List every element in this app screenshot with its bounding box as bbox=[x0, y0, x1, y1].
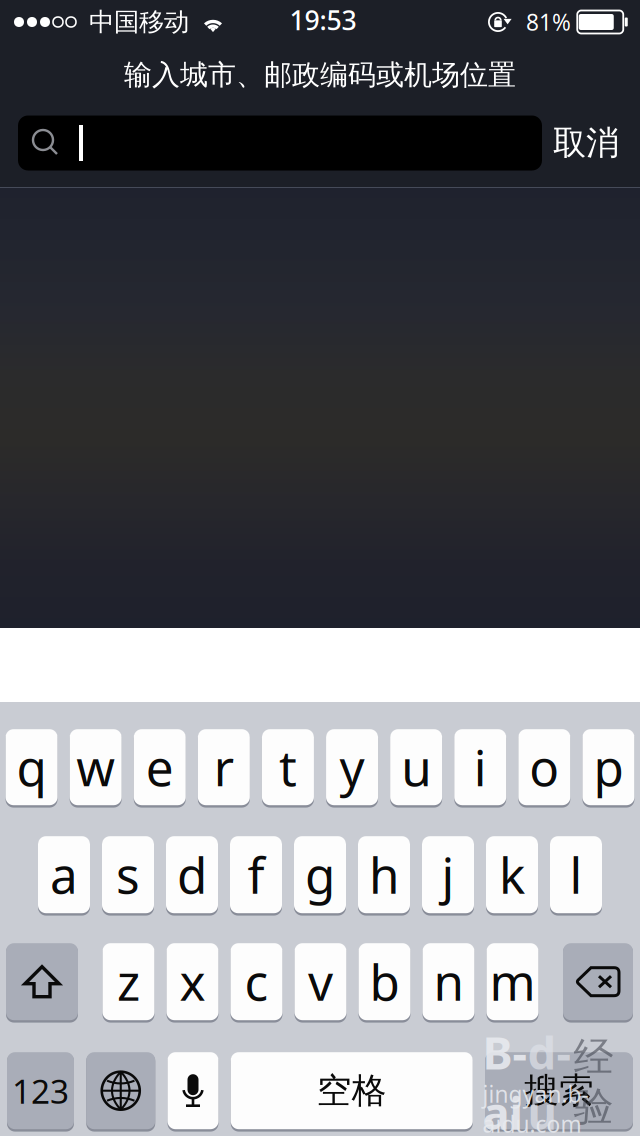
button[interactable]: Switch keyboard bbox=[86, 1053, 155, 1130]
staticText: l bbox=[569, 842, 582, 907]
button[interactable]: 取消 bbox=[553, 115, 619, 170]
button[interactable]: 搜索 bbox=[485, 1053, 633, 1130]
staticText: du bbox=[527, 1022, 571, 1136]
button[interactable]: Shift bbox=[6, 944, 78, 1021]
button[interactable]: a bbox=[38, 837, 90, 914]
button[interactable]: c bbox=[230, 944, 282, 1021]
staticText: m bbox=[489, 949, 535, 1014]
staticText: Bai bbox=[482, 1022, 527, 1136]
staticText: 搜索 bbox=[524, 1069, 594, 1112]
button[interactable]: Delete bbox=[563, 944, 633, 1021]
staticText: k bbox=[499, 842, 525, 907]
staticText: u bbox=[401, 734, 431, 800]
staticText: 经验 bbox=[573, 1033, 613, 1131]
staticText: 空格 bbox=[317, 1069, 387, 1112]
staticText: a bbox=[50, 842, 78, 907]
staticText: jingyan.baidu.com bbox=[482, 1079, 588, 1136]
button[interactable]: d bbox=[166, 837, 218, 914]
button[interactable]: o bbox=[518, 730, 570, 806]
button[interactable]: t bbox=[262, 730, 314, 806]
button[interactable]: k bbox=[486, 837, 538, 914]
staticText: 中国移动 bbox=[89, 6, 189, 37]
staticText: c bbox=[244, 949, 268, 1014]
staticText: g bbox=[305, 842, 335, 907]
staticText: r bbox=[214, 734, 234, 800]
staticText: o bbox=[529, 734, 559, 800]
button[interactable]: n bbox=[422, 944, 474, 1021]
staticText: e bbox=[146, 734, 174, 800]
staticText: j bbox=[441, 842, 454, 907]
button[interactable]: e bbox=[134, 730, 186, 806]
button[interactable]: 123 bbox=[7, 1053, 74, 1130]
staticText: q bbox=[17, 734, 47, 800]
button[interactable]: b bbox=[358, 944, 410, 1021]
button[interactable]: 空格 bbox=[231, 1053, 473, 1130]
staticText: b bbox=[369, 949, 399, 1014]
staticText: 81% bbox=[526, 7, 571, 37]
button[interactable]: p bbox=[582, 730, 634, 806]
staticText: y bbox=[340, 734, 365, 800]
button[interactable]: m bbox=[486, 944, 538, 1021]
button[interactable]: j bbox=[422, 837, 474, 914]
staticText: p bbox=[593, 734, 623, 800]
staticText: h bbox=[369, 842, 399, 907]
button[interactable]: q bbox=[6, 730, 58, 806]
button[interactable]: y bbox=[326, 730, 378, 806]
staticText: t bbox=[279, 734, 297, 800]
staticText: 123 bbox=[12, 1069, 69, 1113]
button[interactable]: i bbox=[454, 730, 506, 806]
button[interactable]: l bbox=[550, 837, 602, 914]
button[interactable]: x bbox=[166, 944, 218, 1021]
button[interactable]: h bbox=[358, 837, 410, 914]
button[interactable]: g bbox=[294, 837, 346, 914]
button[interactable]: z bbox=[102, 944, 154, 1021]
button[interactable] bbox=[18, 115, 542, 170]
staticText: n bbox=[433, 949, 463, 1014]
button[interactable]: u bbox=[390, 730, 442, 806]
staticText: i bbox=[474, 734, 487, 800]
staticText: 19:53 bbox=[289, 2, 356, 38]
button[interactable]: Dictate bbox=[167, 1053, 218, 1130]
button[interactable]: v bbox=[294, 944, 346, 1021]
button[interactable]: r bbox=[198, 730, 250, 806]
staticText: v bbox=[308, 949, 333, 1014]
staticText: w bbox=[76, 734, 115, 800]
staticText: z bbox=[117, 949, 140, 1014]
staticText: 取消 bbox=[553, 122, 619, 163]
button[interactable]: f bbox=[230, 837, 282, 914]
staticText: x bbox=[179, 949, 205, 1014]
staticText: f bbox=[247, 842, 264, 907]
button[interactable]: s bbox=[102, 837, 154, 914]
staticText: 输入城市、邮政编码或机场位置 bbox=[124, 58, 516, 92]
staticText: s bbox=[116, 842, 140, 907]
staticText: d bbox=[177, 842, 207, 907]
button[interactable]: w bbox=[70, 730, 122, 806]
